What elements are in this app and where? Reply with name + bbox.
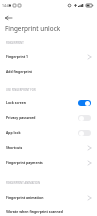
button[interactable]: Privacy password	[0, 115, 97, 130]
button[interactable]: Back	[1, 11, 15, 25]
button[interactable]: Fingerprint payments	[0, 160, 97, 175]
staticText: Privacy password	[6, 115, 36, 120]
staticText: Fingerprint payments	[6, 160, 43, 165]
button[interactable]: Shortcuts	[0, 145, 97, 160]
staticText: FINGERPRINT ANIMATION	[6, 181, 41, 185]
button[interactable]: Vibrate when fingerprint scanned	[0, 209, 97, 216]
staticText: Add fingerprint	[6, 69, 33, 74]
staticText: Fingerprint animation	[6, 195, 44, 200]
button[interactable]: Fingerprint animation	[0, 195, 97, 210]
button[interactable]: Add fingerprint	[0, 69, 97, 84]
staticText: Vibrate when fingerprint scanned	[6, 209, 63, 214]
staticText: Fingerprint unlock	[5, 24, 61, 33]
button[interactable]: App lock	[0, 130, 97, 145]
staticText: FINGERPRINT	[6, 41, 24, 45]
staticText: Lock screen	[6, 100, 26, 105]
staticText: 14:46	[2, 3, 11, 8]
staticText: USE FINGERPRINT FOR	[6, 88, 36, 92]
staticText: Shortcuts	[6, 145, 23, 150]
staticText: App lock	[6, 130, 21, 135]
staticText: Fingerprint 1	[6, 54, 28, 59]
button[interactable]: Lock screen	[0, 100, 97, 115]
button[interactable]: Fingerprint 1	[0, 54, 97, 69]
